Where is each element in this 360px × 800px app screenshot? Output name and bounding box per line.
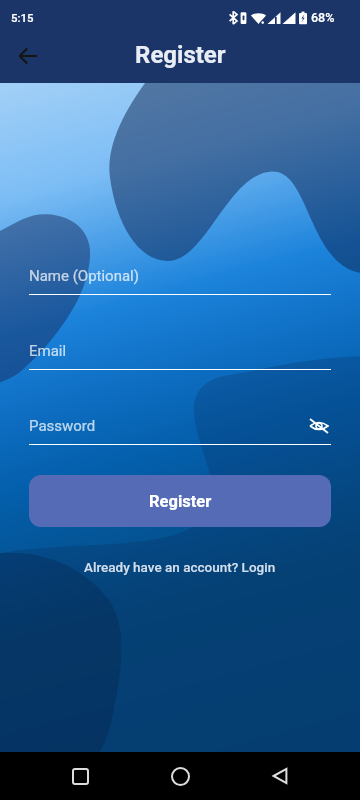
button[interactable]: Already have an account? Login bbox=[84, 559, 276, 575]
button[interactable]: Home bbox=[160, 756, 200, 796]
staticText: Register bbox=[149, 492, 212, 511]
button[interactable]: Back bbox=[260, 756, 300, 796]
staticText: Register bbox=[135, 41, 226, 69]
staticText: Email bbox=[29, 342, 331, 360]
staticText: Already have an account? Login bbox=[84, 559, 276, 575]
button[interactable]: Back bbox=[8, 36, 48, 76]
staticText: Name (Optional) bbox=[29, 267, 331, 285]
button[interactable]: Register bbox=[29, 475, 331, 527]
button[interactable]: Toggle password visibility bbox=[307, 416, 331, 436]
staticText: 68% bbox=[311, 10, 335, 25]
staticText: Password bbox=[29, 417, 307, 435]
staticText: 5:15 bbox=[11, 11, 34, 24]
button[interactable]: Recents bbox=[60, 756, 100, 796]
